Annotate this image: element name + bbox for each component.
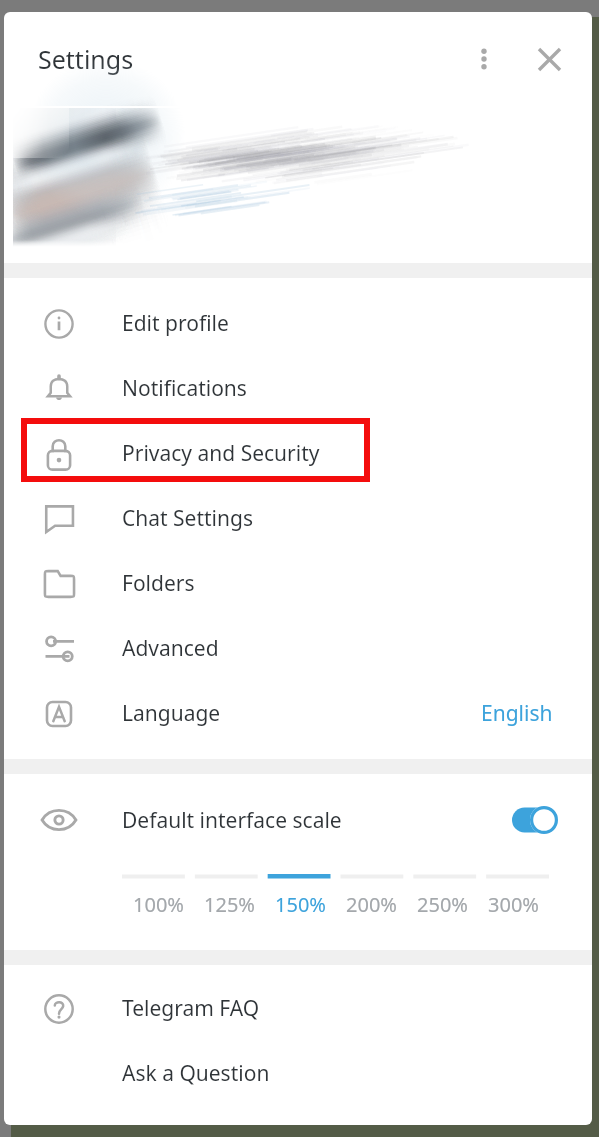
staticText: Ask a Question [122,1059,270,1088]
button[interactable]: Toggle default interface scale [512,806,558,834]
button[interactable]: Default interface scale [4,774,592,866]
button[interactable]: Close [525,35,573,83]
staticText: 200% [346,891,397,913]
staticText: Advanced [122,634,219,663]
staticText: 150% [275,891,326,913]
staticText: Language [122,699,221,728]
button[interactable]: Chat Settings [4,486,592,551]
staticText: 125% [204,891,255,913]
button[interactable]: Language [4,681,592,746]
staticText: Settings [38,42,134,76]
button[interactable]: Edit profile [4,291,592,356]
staticText: Edit profile [122,309,229,338]
staticText: Default interface scale [122,806,342,835]
button[interactable]: More options [460,35,508,83]
button[interactable]: Notifications [4,356,592,421]
staticText: 300% [488,891,539,913]
staticText: Privacy and Security [122,439,320,468]
staticText: Folders [122,569,195,598]
staticText: Notifications [122,374,247,403]
button[interactable]: Ask a Question [4,1041,592,1106]
button[interactable]: Privacy and Security [4,421,592,486]
staticText: Telegram FAQ [122,994,260,1023]
staticText: Chat Settings [122,504,253,533]
staticText: 250% [417,891,468,913]
button[interactable]: Telegram FAQ [4,976,592,1041]
button[interactable]: Folders [4,551,592,616]
staticText: English [481,699,553,728]
staticText: 100% [133,891,184,913]
button[interactable]: Advanced [4,616,592,681]
